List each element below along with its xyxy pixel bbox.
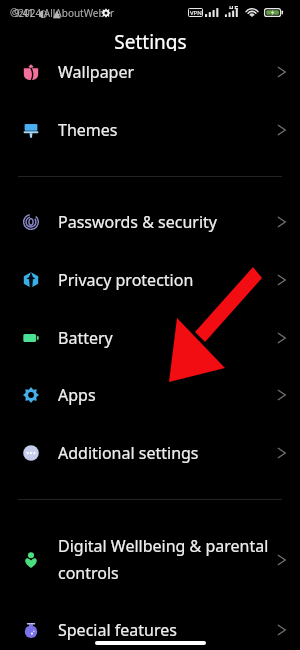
staticText: Settings — [114, 29, 187, 51]
staticText: Additional settings — [58, 442, 263, 464]
button[interactable]: Digital Wellbeing & parental — [0, 517, 300, 602]
button[interactable]: Special features — [0, 601, 300, 650]
button[interactable]: Additional settings — [0, 424, 300, 482]
staticText: ©2024 AllAboutWeb.ir — [10, 6, 115, 20]
staticText: Themes — [58, 119, 263, 141]
staticText: VPN — [190, 9, 202, 16]
staticText: Passwords & security — [58, 211, 263, 233]
staticText: Apps — [58, 384, 263, 406]
staticText: 9:41 ◐ ▲ — [14, 6, 61, 20]
staticText: Battery — [58, 327, 263, 349]
staticText: Special features — [58, 619, 263, 641]
staticText: controls — [58, 562, 119, 584]
button[interactable]: Battery — [0, 309, 300, 367]
button[interactable]: Passwords & security — [0, 193, 300, 251]
staticText: Digital Wellbeing & parental — [58, 535, 269, 557]
button[interactable]: Privacy protection — [0, 251, 300, 309]
button[interactable]: Wallpaper — [0, 43, 300, 101]
button[interactable]: Apps — [0, 366, 300, 424]
staticText: Privacy protection — [58, 269, 263, 291]
button[interactable]: Themes — [0, 101, 300, 159]
staticText: Wallpaper — [58, 61, 263, 83]
